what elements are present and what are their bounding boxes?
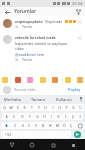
button[interactable]: Emoji	[52, 77, 58, 83]
staticText: cem	[37, 52, 45, 57]
staticText: A	[5, 114, 8, 119]
button[interactable]: M	[54, 122, 61, 129]
staticText: Z	[14, 123, 16, 128]
button[interactable]: L	[62, 113, 69, 120]
staticText: 3s	[15, 58, 19, 62]
button[interactable]: Ç	[68, 122, 75, 129]
staticText: G	[36, 114, 39, 119]
button[interactable]: Emoji	[27, 77, 33, 83]
staticText: X	[22, 123, 24, 128]
staticText: I	[52, 105, 54, 110]
staticText: Disperade	[45, 19, 63, 24]
button[interactable]: Z	[11, 122, 19, 129]
button[interactable]: H	[41, 113, 48, 120]
button[interactable]: O	[56, 104, 63, 111]
staticText: D	[21, 114, 24, 119]
button[interactable]: Ö	[61, 122, 68, 129]
button[interactable]: Paylaş	[67, 86, 82, 93]
staticText: Kullanıcı	[56, 97, 72, 102]
button[interactable]: Tamam	[25, 95, 51, 103]
button[interactable]: Back	[3, 8, 11, 16]
staticText: N	[49, 123, 52, 128]
button[interactable]: G	[34, 113, 41, 120]
button[interactable]: B	[40, 122, 47, 129]
button[interactable]: F	[26, 113, 34, 120]
button[interactable]: Y	[35, 104, 42, 111]
button[interactable]: V	[33, 122, 40, 129]
staticText: hapsettiler, sikintilı ve paylaşan cihaz	[15, 41, 76, 51]
button[interactable]: Emoji	[40, 77, 46, 83]
button[interactable]: Recents	[49, 141, 57, 149]
button[interactable]: ecipetopopbeto	[0, 16, 85, 32]
staticText: Yorum ekle...	[14, 87, 67, 92]
staticText: Yorumlar	[14, 8, 37, 15]
button[interactable]: Enter	[72, 131, 83, 138]
button[interactable]: Merhaba	[0, 95, 25, 103]
button[interactable]: Ü	[77, 104, 84, 111]
button[interactable]: X	[19, 122, 26, 129]
button[interactable]: İ	[76, 113, 83, 120]
button[interactable]: ,	[15, 131, 22, 138]
button[interactable]: R	[21, 104, 28, 111]
button[interactable]: Voice input	[77, 95, 85, 103]
button[interactable]: S	[10, 113, 18, 120]
staticText: .	[67, 132, 68, 137]
staticText: 20:54	[72, 1, 83, 6]
staticText: V	[35, 123, 38, 128]
staticText: Q	[3, 105, 6, 110]
button[interactable]: Emoji	[2, 77, 8, 83]
staticText: ecipetopopbeto	[15, 19, 43, 24]
button[interactable]: .	[64, 131, 71, 138]
button[interactable]: Q	[1, 104, 7, 111]
button[interactable]: zebraile forsolool msak	[0, 32, 85, 65]
button[interactable]: Home	[28, 141, 36, 149]
staticText: ,	[18, 132, 19, 137]
staticText: H	[43, 114, 46, 119]
staticText: U	[44, 105, 47, 110]
staticText: Ğ	[72, 105, 75, 110]
staticText: T	[31, 105, 33, 110]
button[interactable]: Back	[8, 141, 16, 149]
button[interactable]: I	[49, 104, 56, 111]
staticText: 3s	[15, 25, 19, 29]
staticText: B	[42, 123, 45, 128]
staticText: Ü	[79, 105, 82, 110]
button[interactable]: C	[26, 122, 33, 129]
staticText: E	[17, 105, 19, 110]
button[interactable]: W	[7, 104, 14, 111]
button[interactable]: A	[2, 113, 10, 120]
staticText: Ö	[63, 123, 66, 128]
staticText: ?123	[5, 133, 12, 137]
button[interactable]: Emoji	[77, 77, 83, 83]
button[interactable]: Filter	[74, 8, 82, 16]
staticText: Merhaba	[4, 97, 21, 102]
staticText: K	[57, 114, 60, 119]
button[interactable]: Like	[76, 19, 82, 25]
button[interactable]: E	[14, 104, 21, 111]
button[interactable]: U	[42, 104, 49, 111]
staticText: Yanıtla	[22, 25, 33, 29]
button[interactable]: Ş	[69, 113, 76, 120]
button[interactable]: P	[63, 104, 70, 111]
button[interactable]: Backspace	[75, 122, 84, 129]
button[interactable]: J	[48, 113, 55, 120]
button[interactable]: T	[28, 104, 35, 111]
button[interactable]: Kullanıcı	[51, 95, 77, 103]
button[interactable]: N	[47, 122, 54, 129]
staticText: Y	[38, 105, 40, 110]
staticText: İ	[79, 114, 81, 119]
button[interactable]: Keyboard	[69, 141, 77, 149]
button[interactable]: Emoji	[15, 77, 21, 83]
staticText: L	[65, 114, 67, 119]
staticText: W	[9, 105, 13, 110]
button[interactable]: Shift	[1, 122, 11, 129]
button[interactable]: D	[18, 113, 26, 120]
button[interactable]: ?123	[1, 131, 15, 138]
button[interactable]: K	[55, 113, 62, 120]
staticText: Paylaş	[68, 87, 81, 92]
button[interactable]: Ğ	[70, 104, 77, 111]
button[interactable]: Emoji	[65, 77, 71, 83]
button[interactable]: Like	[76, 35, 82, 41]
staticText: @sivakkinsti	[15, 52, 36, 57]
